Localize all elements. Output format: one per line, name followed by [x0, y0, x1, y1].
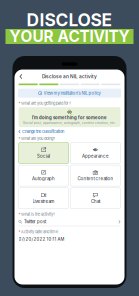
- staticText: Content creation: [77, 176, 113, 181]
- staticText: Activity date and time: [21, 229, 58, 234]
- staticText: Livestream: [33, 199, 55, 204]
- button[interactable]: Chat: [70, 188, 120, 209]
- staticText: Twitter post: [24, 219, 46, 224]
- staticText: Change the classification: [22, 129, 64, 134]
- button[interactable]: Twitter post: [18, 217, 120, 226]
- button[interactable]: Appearance: [70, 143, 120, 164]
- staticText: Social post, appearance, autograph, cont…: [23, 121, 116, 125]
- staticText: Autograph: [32, 176, 55, 181]
- button[interactable]: Change the classification: [18, 127, 64, 136]
- staticText: DISCLOSE: [26, 9, 112, 30]
- staticText: *: [18, 101, 20, 106]
- button[interactable]: Content creation: [70, 165, 120, 186]
- staticText: *: [18, 136, 20, 141]
- staticText: I'm doing something for someone: [32, 115, 107, 120]
- staticText: Chat: [91, 199, 100, 204]
- staticText: What are you getting paid for?: [21, 101, 71, 106]
- staticText: What are you doing?: [21, 136, 55, 141]
- staticText: *: [18, 212, 20, 217]
- button[interactable]: Autograph: [18, 165, 69, 186]
- staticText: 07/20/2022 10:11 AM: [18, 237, 64, 242]
- staticText: Appearance: [82, 153, 109, 159]
- staticText: *: [18, 229, 20, 234]
- staticText: What is the activity?: [21, 212, 55, 217]
- staticText: View my institution's NIL policy: [43, 91, 100, 96]
- button[interactable]: Livestream: [18, 188, 69, 209]
- button[interactable]: View my institution's NIL policy: [14, 89, 124, 98]
- button[interactable]: Social: [18, 143, 69, 164]
- staticText: YOUR ACTIVITY: [9, 27, 129, 46]
- button[interactable]: 07/20/2022 10:11 AM: [18, 235, 120, 244]
- staticText: Disclose an NIL activity: [42, 74, 97, 79]
- staticText: Social: [37, 153, 50, 159]
- button[interactable]: Back: [16, 72, 25, 81]
